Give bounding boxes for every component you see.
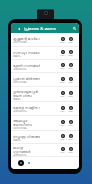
button[interactable]: Play — [59, 134, 66, 141]
staticText: കീർത്തനം — [13, 68, 27, 71]
staticText: Save — [67, 81, 74, 84]
button[interactable]: Play — [59, 37, 66, 44]
staticText: പ്രഭാതം & മനോ — [24, 25, 56, 31]
button[interactable]: Search — [71, 25, 78, 32]
staticText: ഭജനം — [13, 139, 22, 142]
staticText: Play — [59, 151, 66, 154]
staticText: Save — [67, 54, 74, 57]
button[interactable]: Save — [67, 50, 74, 57]
button[interactable]: Play — [59, 91, 66, 98]
button[interactable]: ഭക്തി ഗാനങ്ങൾ കേൾക്ക — [11, 60, 79, 73]
staticText: Play — [59, 124, 66, 127]
staticText: സന്ധ്യാ നാമജപ ഗീതം — [13, 50, 40, 55]
button[interactable]: കൃഷ്ണന്റെ മഹിമ പാടൽ — [11, 33, 79, 47]
staticText: ദാസനാമം — [13, 127, 28, 130]
button[interactable]: Save — [67, 147, 74, 154]
button[interactable]: Save — [67, 63, 74, 70]
staticText: Save — [67, 110, 74, 113]
button[interactable]: Save — [67, 91, 74, 98]
staticText: Play — [59, 138, 66, 141]
staticText: ആലപ്പുഴ ഭജനഗാനം പുതിയ — [13, 118, 40, 127]
staticText: ദാസനാമം — [13, 41, 28, 44]
button[interactable]: Play — [59, 120, 66, 127]
button[interactable]: Play — [59, 147, 66, 154]
staticText: ഭജനം — [13, 55, 22, 58]
staticText: കൃഷ്ണന്റെ മഹിമ പാടൽ — [13, 36, 40, 41]
staticText: സ്തോത്ര ഗീതങ്ങൾ മല — [13, 134, 40, 139]
staticText: Save — [67, 41, 74, 44]
button[interactable]: കേരള സങ്ഗീത സഭകൾ — [11, 102, 79, 116]
button[interactable]: Save — [67, 106, 74, 113]
button[interactable]: Play — [59, 106, 66, 113]
button[interactable]: Save — [67, 37, 74, 44]
button[interactable]: പ്രഭാത കീർത്തന പാട്ട് — [11, 73, 79, 87]
staticText: Save — [67, 95, 74, 98]
staticText: മംഗള ഗാനങ്ങൾ പുതിയ ആർപ്പ് — [13, 145, 40, 154]
button[interactable]: Save — [67, 120, 74, 127]
button[interactable]: മംഗള ഗാനങ്ങൾ പുതിയ ആർപ്പ് — [11, 144, 79, 157]
button[interactable]: ഗുരുവായൂരപ്പൻ ഭജന ഗീതം — [11, 87, 79, 102]
staticText: Play — [59, 81, 66, 84]
staticText: ഭക്തി ഗാനങ്ങൾ കേൾക്ക — [13, 63, 40, 68]
button[interactable]: Save — [67, 77, 74, 84]
staticText: ദാസനാമം — [13, 81, 28, 84]
staticText: കീർത്തനം — [13, 154, 27, 157]
staticText: Save — [67, 67, 74, 70]
button[interactable]: Play — [18, 160, 24, 166]
staticText: Play — [59, 95, 66, 98]
staticText: ഗുരുവായൂരപ്പൻ ഭജന ഗീതം — [13, 89, 40, 98]
staticText: ഭജനം — [13, 98, 22, 101]
button[interactable]: Play — [59, 77, 66, 84]
button[interactable]: Play — [59, 50, 66, 57]
button[interactable]: Back — [15, 25, 22, 32]
staticText: Save — [67, 124, 74, 127]
button[interactable]: Save — [67, 134, 74, 141]
staticText: Play — [59, 41, 66, 44]
staticText: കേരള സങ്ഗീത സഭകൾ — [13, 105, 40, 110]
staticText: Save — [67, 138, 74, 141]
staticText: Play — [59, 110, 66, 113]
staticText: പ്രഭാത കീർത്തന പാട്ട് — [13, 76, 40, 81]
staticText: Play — [59, 54, 66, 57]
staticText: Save — [67, 151, 74, 154]
button[interactable]: സന്ധ്യാ നാമജപ ഗീതം — [11, 47, 79, 60]
staticText: കീർത്തനം — [13, 110, 27, 113]
button[interactable]: സ്തോത്ര ഗീതങ്ങൾ മല — [11, 131, 79, 144]
button[interactable]: Play — [59, 63, 66, 70]
staticText: Play — [59, 67, 66, 70]
button[interactable]: ആലപ്പുഴ ഭജനഗാനം പുതിയ — [11, 116, 79, 131]
